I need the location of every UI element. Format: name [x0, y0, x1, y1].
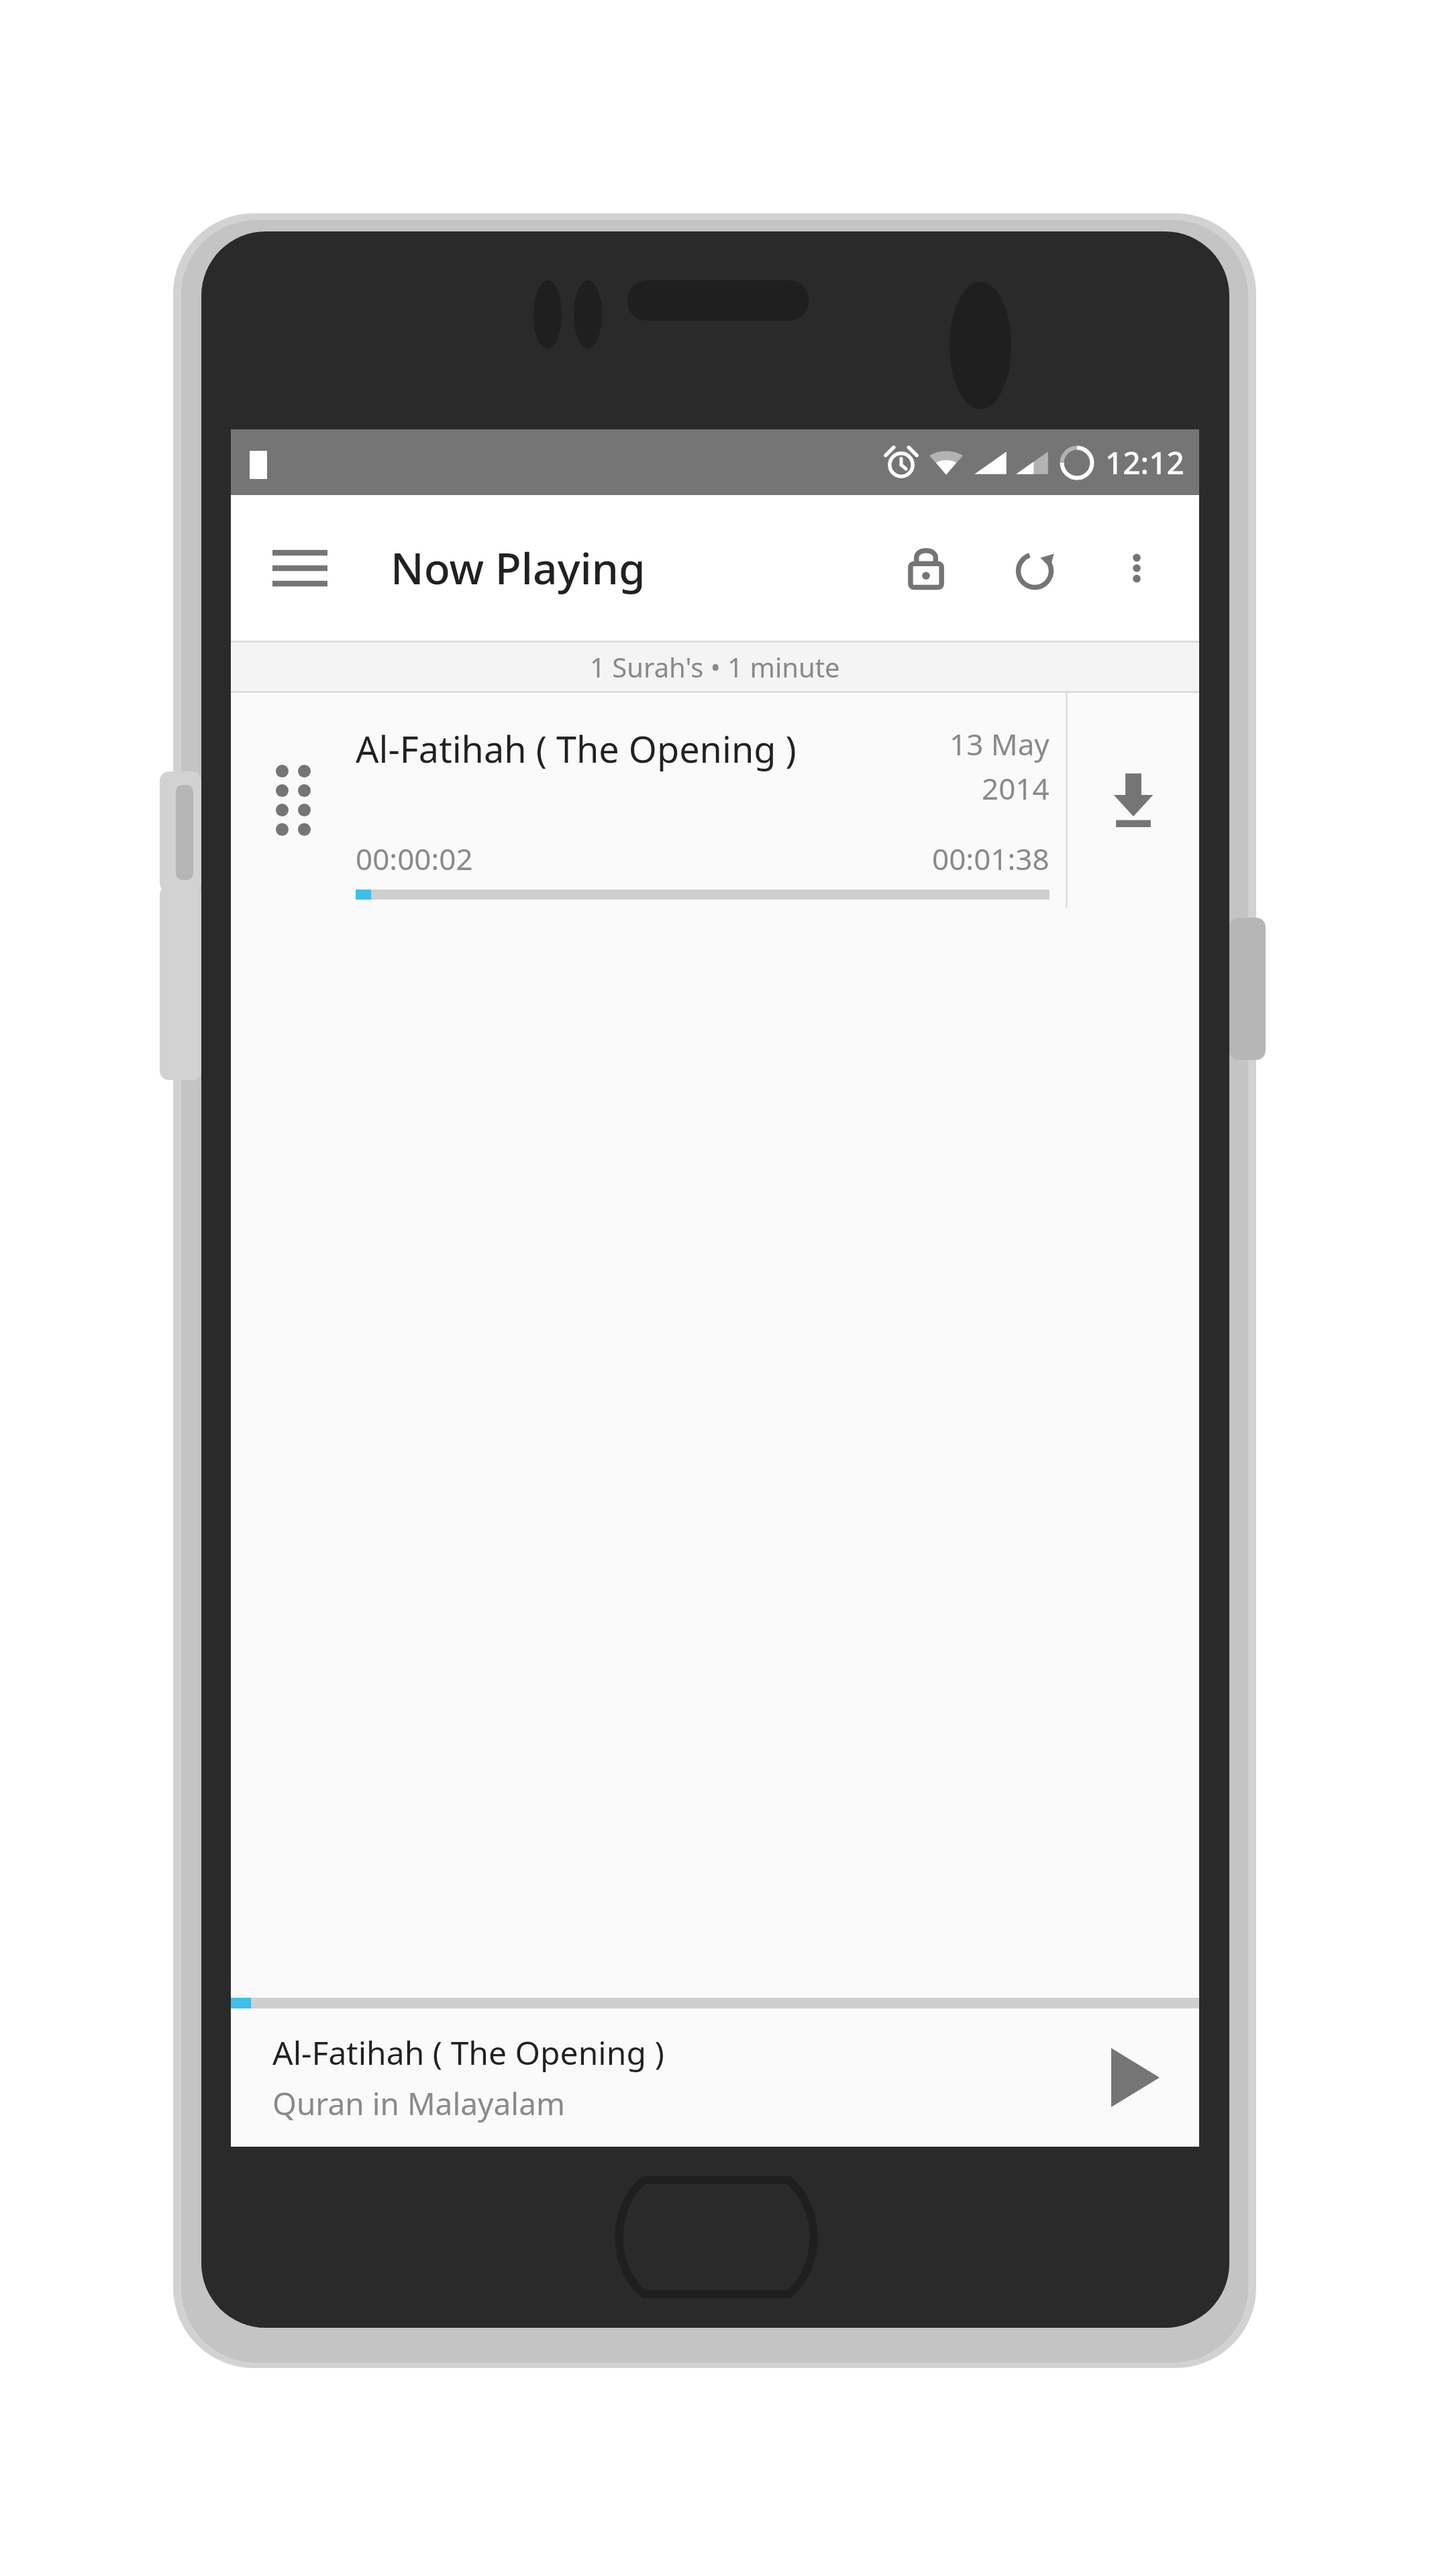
- staticText: 12:12: [1105, 441, 1184, 484]
- staticText: 00:01:38: [932, 839, 1050, 879]
- button[interactable]: More options: [1100, 531, 1174, 605]
- button[interactable]: Refresh: [998, 531, 1072, 605]
- button[interactable]: Al-Fatihah ( The Opening ): [231, 693, 1199, 908]
- staticText: Al-Fatihah ( The Opening ): [356, 724, 797, 773]
- staticText: Now Playing: [391, 539, 646, 597]
- staticText: 1 Surah's • 1 minute: [590, 649, 840, 685]
- staticText: Quran in Malayalam: [272, 2082, 566, 2125]
- staticText: 00:00:02: [356, 839, 473, 879]
- button[interactable]: Play: [1072, 2008, 1199, 2147]
- button[interactable]: Open navigation menu: [263, 531, 337, 605]
- staticText: 13 May: [950, 724, 1050, 764]
- button[interactable]: Download: [1068, 693, 1199, 908]
- button[interactable]: Al-Fatihah ( The Opening ): [231, 2008, 1199, 2147]
- staticText: 2014: [982, 768, 1050, 808]
- button[interactable]: Lock screen orientation: [889, 531, 963, 605]
- staticText: Al-Fatihah ( The Opening ): [272, 2031, 664, 2074]
